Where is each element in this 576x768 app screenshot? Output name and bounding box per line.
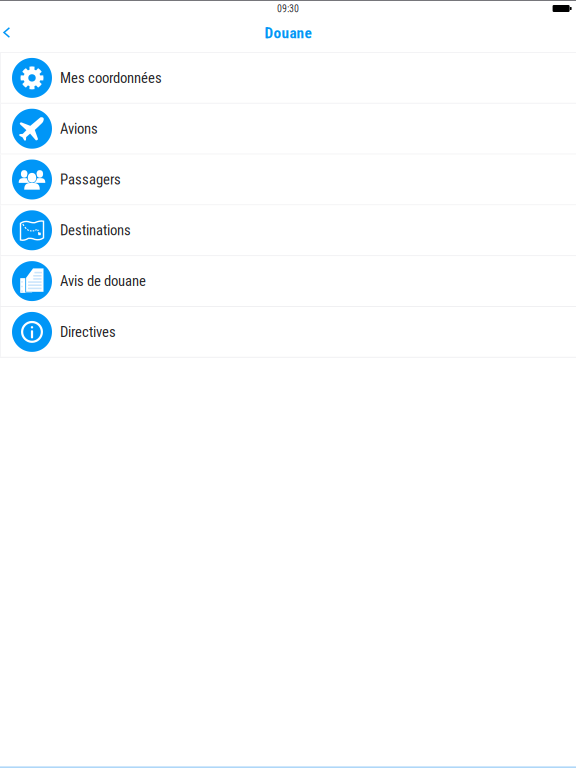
staticText: Avis de douane [60,272,146,290]
staticText: Passagers [60,171,121,188]
button[interactable]: Back [0,17,21,51]
button[interactable]: Avis de douane [0,256,576,307]
button[interactable]: Passagers [0,155,576,205]
button[interactable]: Destinations [0,205,576,256]
staticText: Douane [264,24,311,42]
button[interactable]: Directives [0,307,576,358]
staticText: Avions [60,120,98,137]
staticText: 09:30 [277,3,299,15]
button[interactable]: Avions [0,104,576,155]
staticText: Destinations [60,222,131,239]
button[interactable]: Mes coordonnées [0,53,576,104]
staticText: Mes coordonnées [60,69,162,86]
staticText: Directives [60,323,116,340]
